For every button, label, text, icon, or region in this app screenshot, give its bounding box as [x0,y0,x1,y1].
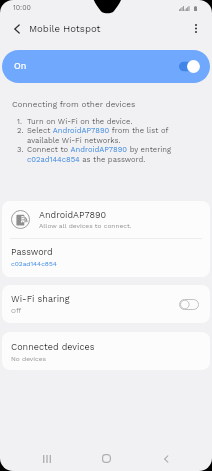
staticText: c02ad144c854 [11,260,57,268]
staticText: No devices [11,355,46,363]
button[interactable]: Connected devices [2,332,210,370]
staticText: Allow all devices to connect. [39,222,132,230]
button[interactable]: Back [154,447,177,470]
staticText: Connecting from other devices [12,99,136,109]
button[interactable]: Home [95,447,118,470]
staticText: Mobile Hotspot [29,23,101,34]
staticText: AndroidAP7890 [39,210,107,221]
staticText: 2. [17,126,32,135]
staticText: Select AndroidAP7890 from the list of av… [27,126,190,145]
button[interactable]: AndroidAP7890 [2,201,210,238]
button[interactable]: On [2,50,210,83]
staticText: Off [11,307,22,315]
staticText: Connect to AndroidAP7890 by entering c02… [27,145,190,164]
staticText: On [14,61,27,72]
staticText: 1. [17,117,32,126]
staticText: Password [11,247,53,258]
staticText: 3. [17,145,32,154]
button[interactable]: More options [184,17,207,40]
button[interactable]: Wi-Fi sharing [2,285,210,323]
staticText: Connected devices [11,342,95,353]
button[interactable]: Password [2,239,210,277]
staticText: Turn on Wi-Fi on the device. [27,117,133,126]
staticText: Wi-Fi sharing [11,294,70,305]
staticText: 10:00 [13,3,31,11]
button[interactable]: Recents [35,447,58,470]
button[interactable]: Navigate up [5,17,29,41]
